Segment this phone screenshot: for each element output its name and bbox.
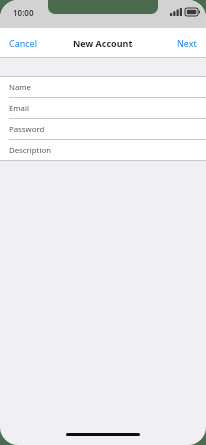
staticText: Password — [9, 124, 45, 135]
staticText: Next — [177, 37, 197, 49]
staticText: Email — [9, 103, 30, 114]
button[interactable]: Description — [0, 140, 206, 160]
button[interactable]: Cancel — [0, 31, 47, 55]
staticText: New Account — [73, 37, 133, 49]
staticText: Name — [9, 82, 31, 93]
staticText: Description — [9, 145, 51, 156]
button[interactable]: Name — [0, 77, 206, 98]
button[interactable]: Password — [0, 119, 206, 140]
staticText: 10:00 — [13, 7, 34, 18]
staticText: Cancel — [9, 37, 38, 49]
button[interactable]: Next — [168, 31, 206, 55]
button[interactable]: Email — [0, 98, 206, 119]
